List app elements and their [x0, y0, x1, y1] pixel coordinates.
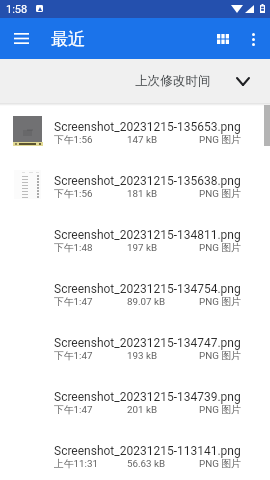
staticText: 147 kB [127, 134, 199, 145]
button[interactable]: 上次修改时间 [135, 73, 250, 89]
staticText: 56.63 kB [127, 458, 199, 469]
staticText: 最近 [51, 28, 86, 50]
button[interactable]: Screenshot_20231215-134754.png [0, 268, 270, 322]
staticText: PNG 图片 [199, 134, 241, 146]
staticText: PNG 图片 [199, 242, 241, 254]
staticText: 197 kB [127, 242, 199, 253]
staticText: Screenshot_20231215-134747.png [54, 336, 241, 350]
staticText: 上午11:31 [54, 458, 127, 470]
staticText: 下午1:47 [54, 404, 127, 416]
button[interactable]: Open navigation drawer [0, 18, 42, 59]
button[interactable]: Screenshot_20231215-134811.png [0, 214, 270, 268]
staticText: 下午1:56 [54, 134, 127, 146]
staticText: PNG 图片 [199, 188, 241, 200]
button[interactable]: Screenshot_20231215-134747.png [0, 322, 270, 376]
button[interactable]: Screenshot_20231215-135638.png [0, 160, 270, 214]
staticText: Screenshot_20231215-134754.png [54, 282, 241, 296]
button[interactable]: Screenshot_20231215-113141.png [0, 430, 270, 480]
staticText: 下午1:47 [54, 350, 127, 362]
staticText: 89.07 kB [127, 296, 199, 307]
staticText: PNG 图片 [199, 404, 241, 416]
staticText: 下午1:56 [54, 188, 127, 200]
staticText: 181 kB [127, 188, 199, 199]
staticText: Screenshot_20231215-135638.png [54, 174, 241, 188]
staticText: 201 kB [127, 404, 199, 415]
staticText: PNG 图片 [199, 350, 241, 362]
staticText: 下午1:48 [54, 242, 127, 254]
staticText: PNG 图片 [199, 458, 241, 470]
staticText: 193 kB [127, 350, 199, 361]
staticText: Screenshot_20231215-135653.png [54, 120, 241, 134]
button[interactable]: Switch to grid view [204, 20, 242, 58]
staticText: Screenshot_20231215-134811.png [54, 228, 241, 242]
staticText: PNG 图片 [199, 296, 241, 308]
button[interactable]: More options [236, 22, 270, 56]
staticText: 1:58 [6, 3, 28, 16]
staticText: Screenshot_20231215-113141.png [54, 444, 241, 458]
button[interactable]: Screenshot_20231215-134739.png [0, 376, 270, 430]
staticText: 上次修改时间 [135, 73, 211, 89]
staticText: Screenshot_20231215-134739.png [54, 390, 241, 404]
staticText: 下午1:47 [54, 296, 127, 308]
button[interactable]: Screenshot_20231215-135653.png [0, 106, 270, 160]
